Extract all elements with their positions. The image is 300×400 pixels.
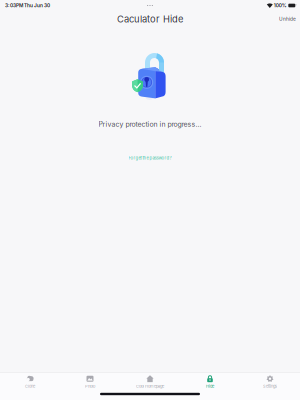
button[interactable]: Unhide xyxy=(275,13,300,25)
staticText: Clone xyxy=(25,384,35,389)
button[interactable]: Settings xyxy=(240,372,300,391)
staticText: 100% xyxy=(273,3,287,8)
staticText: Caculator Hide xyxy=(117,13,183,25)
button[interactable]: Clone xyxy=(0,372,60,391)
staticText: 3:03PM xyxy=(5,3,23,8)
staticText: Thu Jun 30 xyxy=(23,3,50,8)
staticText: Settings xyxy=(263,384,277,389)
staticText: Hide xyxy=(206,384,214,389)
button[interactable]: Hide xyxy=(180,372,240,391)
staticText: Forget the password? xyxy=(128,155,171,161)
button[interactable]: Forget the password? xyxy=(123,152,176,164)
button[interactable]: Photo xyxy=(60,372,120,391)
button[interactable]: Cool Homepage xyxy=(120,372,180,391)
staticText: Photo xyxy=(85,384,95,389)
staticText: Privacy protection in progress... xyxy=(98,120,201,128)
staticText: Unhide xyxy=(279,16,296,22)
staticText: Cool Homepage xyxy=(136,384,164,389)
